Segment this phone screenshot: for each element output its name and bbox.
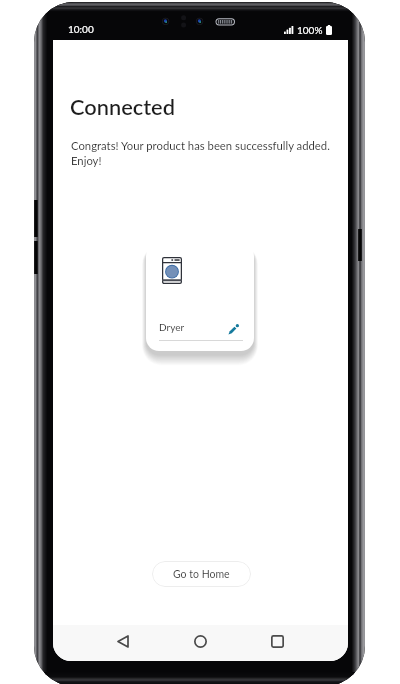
staticText: Go to Home	[173, 568, 230, 581]
button[interactable]: Dryer	[146, 243, 254, 351]
button[interactable]: Recent apps	[261, 625, 293, 657]
button[interactable]: Go to Home	[152, 561, 251, 587]
staticText: Dryer	[159, 321, 185, 333]
staticText: Congrats! Your product has been successf…	[71, 139, 335, 167]
button[interactable]: Home	[184, 625, 216, 657]
staticText: 10:00	[68, 23, 94, 35]
staticText: Connected	[70, 93, 175, 119]
button[interactable]: Back	[107, 625, 139, 657]
staticText: 100%	[297, 24, 323, 36]
other: Edit name	[228, 324, 239, 335]
